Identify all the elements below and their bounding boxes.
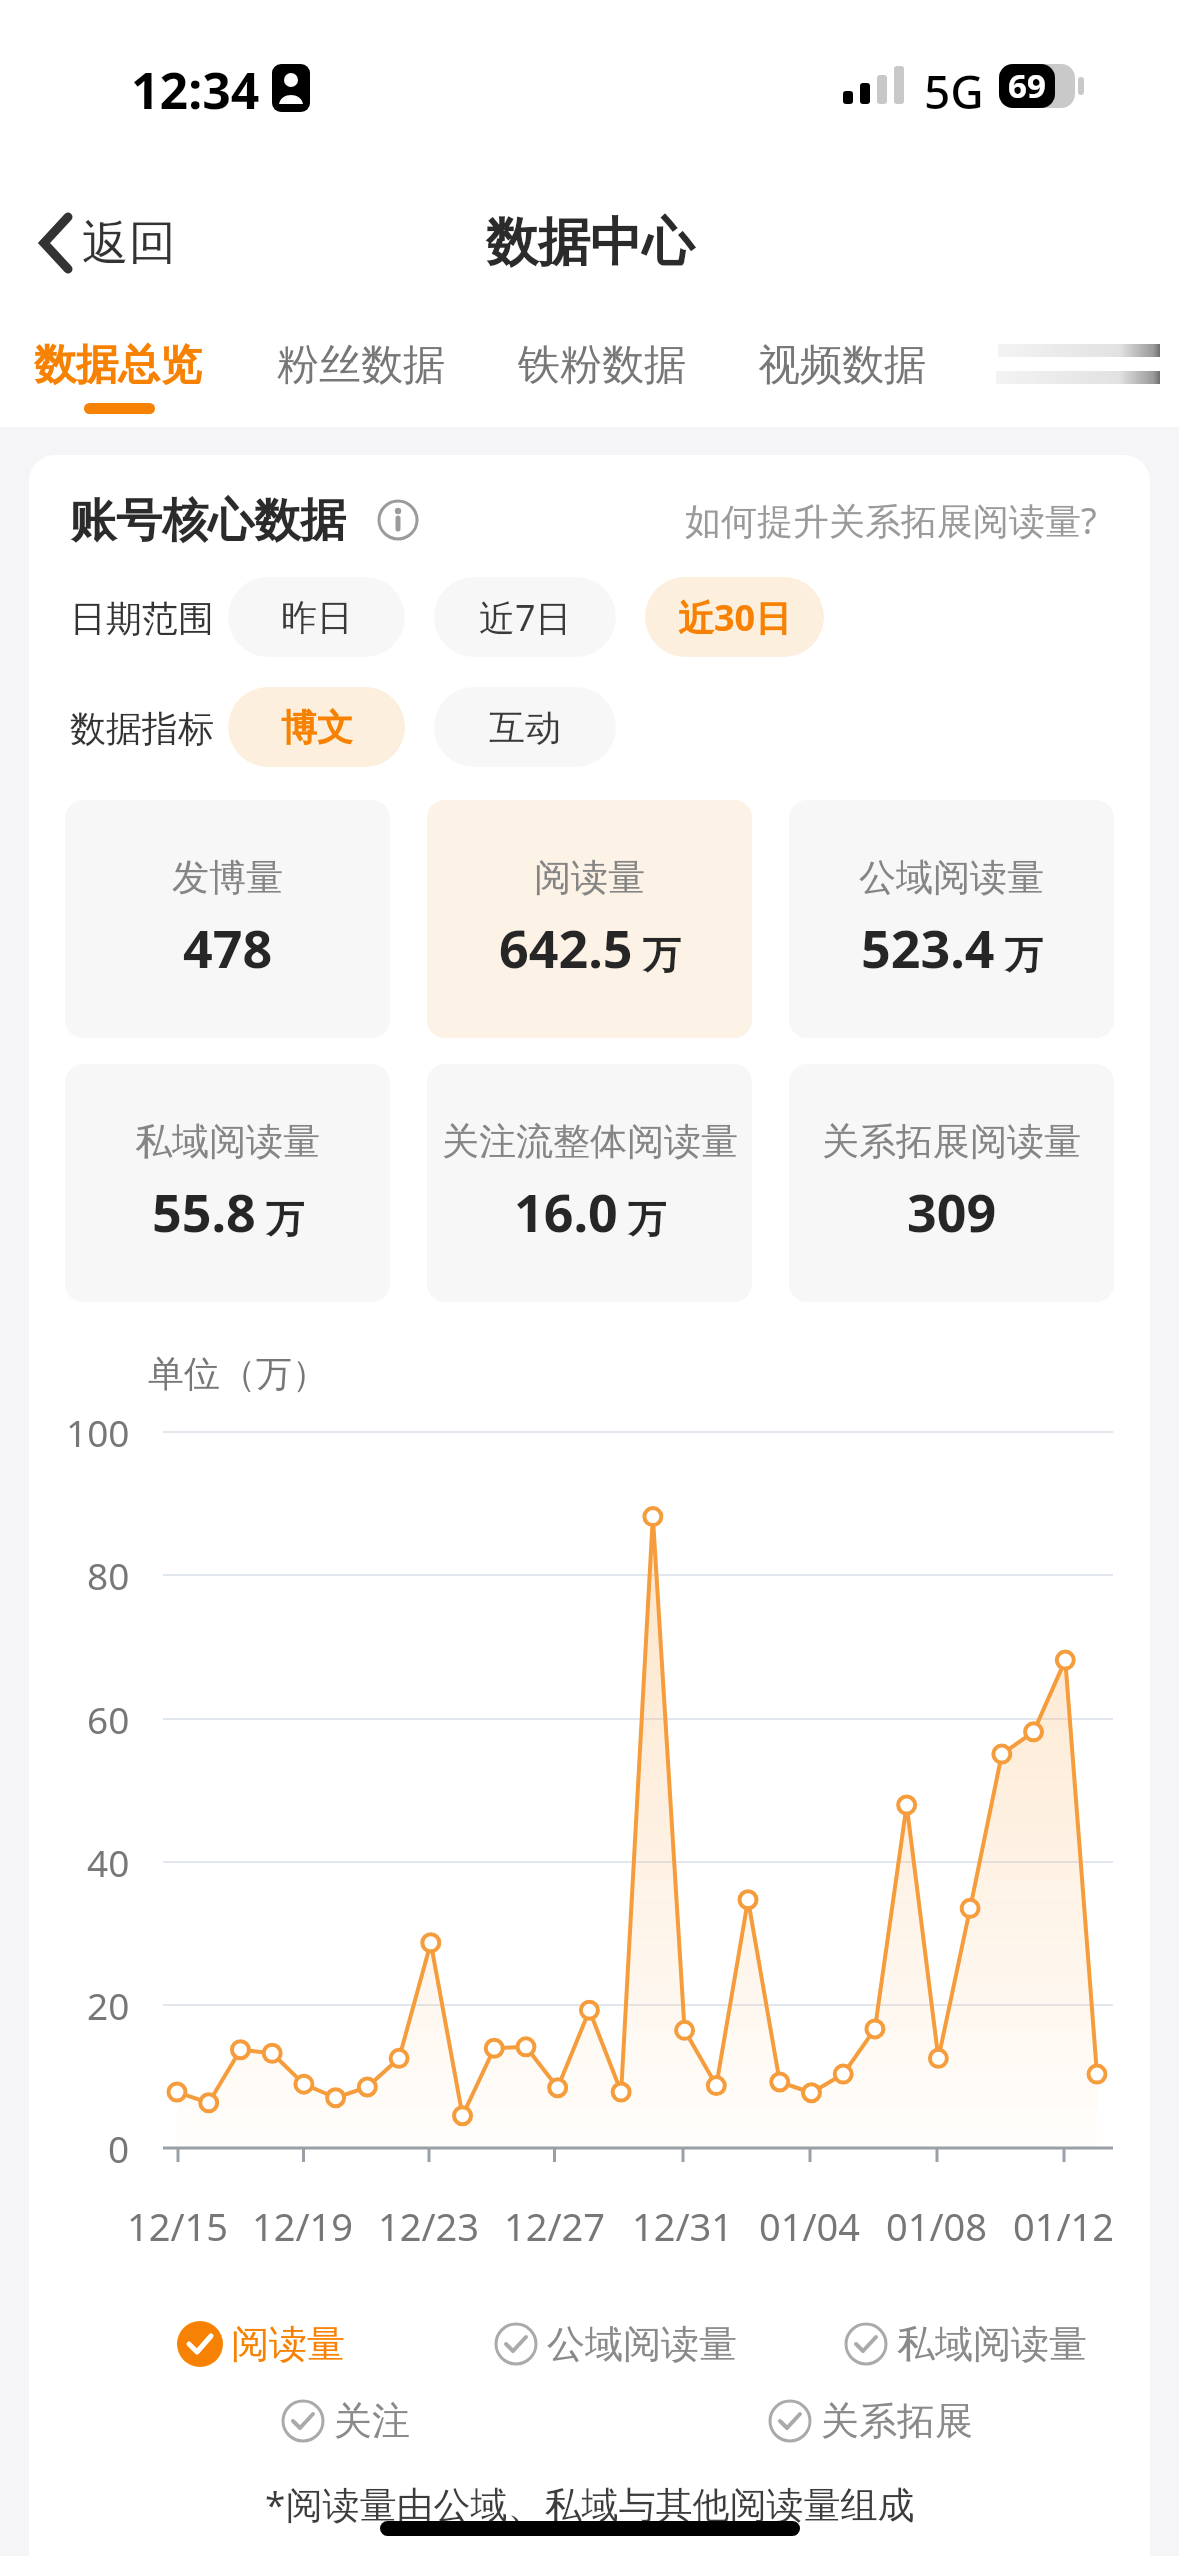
button[interactable]: 阅读量 [177, 2314, 354, 2374]
staticText: 55.8 万 [152, 1176, 304, 1246]
button[interactable]: 如何提升关系拓展阅读量? [650, 495, 1097, 545]
staticText: 昨日 [281, 595, 353, 640]
staticText: 12/19 [252, 2200, 354, 2250]
button[interactable]: 粉丝数据 [261, 336, 461, 394]
button[interactable]: 关系拓展阅读量 [789, 1064, 1114, 1302]
button[interactable]: 返回 [30, 205, 190, 281]
staticText: 返回 [82, 214, 176, 273]
staticText: 20 [87, 1980, 130, 2030]
staticText: 关注 [334, 2397, 410, 2445]
button[interactable]: 昨日 [228, 577, 405, 657]
button[interactable]: 铁粉数据 [502, 336, 702, 394]
staticText: 数据中心 [486, 210, 694, 276]
staticText: 80 [87, 1550, 130, 1600]
button[interactable]: 阅读量 [427, 800, 752, 1038]
staticText: 如何提升关系拓展阅读量? [685, 496, 1097, 545]
staticText: 账号核心数据 [70, 492, 346, 548]
button[interactable]: 关注流整体阅读量 [427, 1064, 752, 1302]
button[interactable]: 公域阅读量 [789, 800, 1114, 1038]
button[interactable]: 关系拓展 [767, 2391, 984, 2451]
staticText: 12/27 [504, 2200, 606, 2250]
staticText: 12/15 [127, 2200, 229, 2250]
staticText: 40 [87, 1837, 130, 1887]
button[interactable]: 公域阅读量 [493, 2314, 745, 2374]
staticText: 100 [66, 1407, 130, 1457]
staticText: 关系拓展 [821, 2397, 973, 2445]
staticText: 公域阅读量 [859, 854, 1044, 901]
button[interactable]: 发博量 [65, 800, 390, 1038]
staticText: 523.4 万 [861, 912, 1043, 982]
staticText: 发博量 [172, 854, 283, 901]
staticText: 12/23 [378, 2200, 480, 2250]
staticText: 近30日 [678, 593, 792, 642]
staticText: 60 [87, 1694, 130, 1744]
staticText: 数据总览 [34, 339, 202, 392]
staticText: 单位（万） [148, 1351, 328, 1396]
staticText: 日期范围 [70, 596, 214, 641]
staticText: 博文 [281, 705, 353, 750]
staticText: 粉丝数据 [277, 339, 445, 392]
button[interactable]: 博文 [228, 687, 405, 767]
button[interactable]: 近7日 [434, 577, 616, 657]
button[interactable]: 关注 [280, 2391, 422, 2451]
button[interactable]: 私域阅读量 [843, 2314, 1095, 2374]
staticText: 互动 [489, 705, 561, 750]
staticText: 01/12 [1013, 2200, 1115, 2250]
staticText: 私域阅读量 [135, 1118, 320, 1165]
staticText: 478 [183, 912, 273, 982]
staticText: 12:34 [131, 56, 260, 118]
staticText: 近7日 [479, 593, 572, 642]
staticText: 公域阅读量 [547, 2320, 737, 2368]
staticText: 642.5 万 [499, 912, 681, 982]
staticText: 16.0 万 [514, 1176, 666, 1246]
staticText: 私域阅读量 [897, 2320, 1087, 2368]
staticText: 01/04 [759, 2200, 861, 2250]
button[interactable]: 视频数据 [742, 336, 942, 394]
staticText: 关系拓展阅读量 [822, 1118, 1081, 1165]
staticText: 阅读量 [231, 2320, 345, 2368]
staticText: 01/08 [886, 2200, 988, 2250]
button[interactable]: 近30日 [645, 577, 824, 657]
staticText: 阅读量 [534, 854, 645, 901]
staticText: 关注流整体阅读量 [442, 1118, 738, 1165]
staticText: 5G [924, 60, 984, 116]
staticText: 铁粉数据 [518, 339, 686, 392]
staticText: 视频数据 [758, 339, 926, 392]
staticText: 69 [1008, 63, 1046, 107]
staticText: *阅读量由公域、私域与其他阅读量组成 [265, 2478, 915, 2529]
button[interactable]: 私域阅读量 [65, 1064, 390, 1302]
button[interactable]: 互动 [434, 687, 616, 767]
staticText: 0 [108, 2123, 130, 2173]
button[interactable]: 数据总览 [18, 336, 218, 394]
staticText: 12/31 [632, 2200, 734, 2250]
staticText: 309 [907, 1176, 997, 1246]
staticText: 数据指标 [70, 706, 214, 751]
